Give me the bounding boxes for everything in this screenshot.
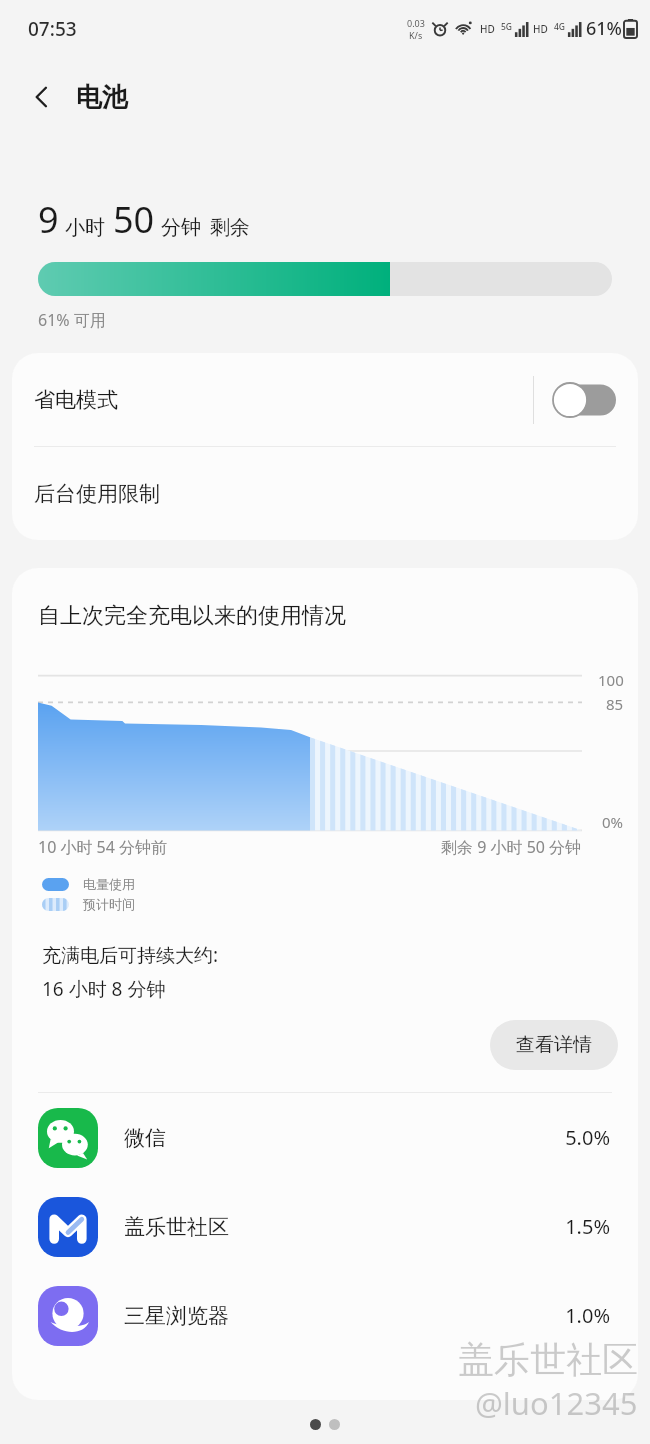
staticText: 后台使用限制 bbox=[34, 481, 160, 507]
staticText: 16 小时 8 分钟 bbox=[42, 976, 166, 1002]
staticText: 电池 bbox=[76, 81, 128, 114]
staticText: 0.03 bbox=[407, 17, 425, 29]
staticText: 10 小时 54 分钟前 bbox=[38, 836, 168, 858]
staticText: 小时 bbox=[65, 215, 105, 240]
staticText: 剩余 9 小时 50 分钟 bbox=[441, 836, 582, 858]
staticText: 分钟 bbox=[161, 215, 201, 240]
staticText: 5.0% bbox=[565, 1124, 610, 1151]
button[interactable]: Back bbox=[16, 71, 68, 123]
staticText: 0% bbox=[602, 812, 624, 832]
button[interactable]: 盖乐世社区 bbox=[12, 1182, 638, 1271]
staticText: 1.0% bbox=[565, 1302, 610, 1329]
staticText: 85 bbox=[606, 694, 624, 714]
staticText: 自上次完全充电以来的使用情况 bbox=[38, 602, 346, 630]
staticText: K/s bbox=[409, 29, 423, 41]
staticText: 5G bbox=[501, 21, 513, 33]
staticText: 查看详情 bbox=[516, 1033, 592, 1057]
staticText: 充满电后可持续大约: bbox=[42, 942, 219, 968]
staticText: HD bbox=[533, 22, 548, 36]
staticText: 省电模式 bbox=[34, 387, 533, 413]
staticText: HD bbox=[480, 22, 495, 36]
staticText: 盖乐世社区 bbox=[124, 1214, 565, 1240]
staticText: 9 bbox=[38, 195, 59, 244]
staticText: 61% 可用 bbox=[38, 309, 106, 331]
staticText: 预计时间 bbox=[83, 896, 135, 912]
button[interactable]: Power saving mode toggle bbox=[552, 382, 616, 418]
button[interactable]: 三星浏览器 bbox=[12, 1271, 638, 1360]
staticText: 07:53 bbox=[28, 16, 77, 42]
button[interactable]: 省电模式 bbox=[12, 353, 638, 446]
button[interactable]: 查看详情 bbox=[490, 1020, 618, 1070]
staticText: 4G bbox=[554, 21, 566, 33]
staticText: 微信 bbox=[124, 1125, 565, 1151]
staticText: 50 bbox=[113, 195, 155, 244]
staticText: 电量使用 bbox=[83, 876, 135, 892]
button[interactable]: 后台使用限制 bbox=[12, 447, 638, 540]
staticText: 61% bbox=[586, 16, 622, 41]
staticText: 100 bbox=[598, 670, 624, 690]
button[interactable]: 微信 bbox=[12, 1093, 638, 1182]
staticText: 盖乐世社区 bbox=[458, 1337, 638, 1382]
staticText: 剩余 bbox=[210, 215, 250, 240]
staticText: 1.5% bbox=[565, 1213, 610, 1240]
staticText: @luo12345 bbox=[475, 1382, 638, 1424]
staticText: 三星浏览器 bbox=[124, 1303, 565, 1329]
